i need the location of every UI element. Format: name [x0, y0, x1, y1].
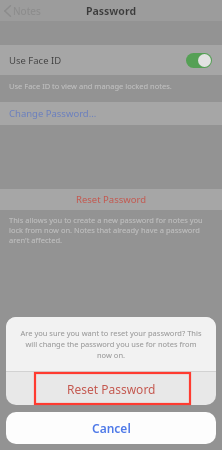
staticText: Reset Password [67, 381, 156, 397]
staticText: Use Face ID to view and manage locked no… [9, 81, 172, 91]
staticText: Reset Password [76, 193, 147, 206]
button[interactable]: Reset Password [6, 372, 216, 405]
staticText: Password [86, 4, 137, 18]
staticText: Are you sure you want to reset your pass… [18, 328, 204, 360]
staticText: Change Password... [9, 107, 97, 120]
button[interactable]: Use Face ID [0, 45, 222, 75]
staticText: This allows you to create a new password… [9, 215, 213, 245]
button[interactable]: Use Face ID toggle, on [186, 53, 212, 68]
button[interactable]: Notes [0, 0, 47, 21]
button[interactable]: Cancel [6, 412, 216, 444]
button[interactable]: Change Password... [0, 102, 222, 125]
button[interactable]: Reset Password [0, 189, 222, 210]
staticText: Notes [13, 4, 41, 18]
staticText: Cancel [92, 420, 131, 436]
staticText: Use Face ID [9, 54, 62, 67]
